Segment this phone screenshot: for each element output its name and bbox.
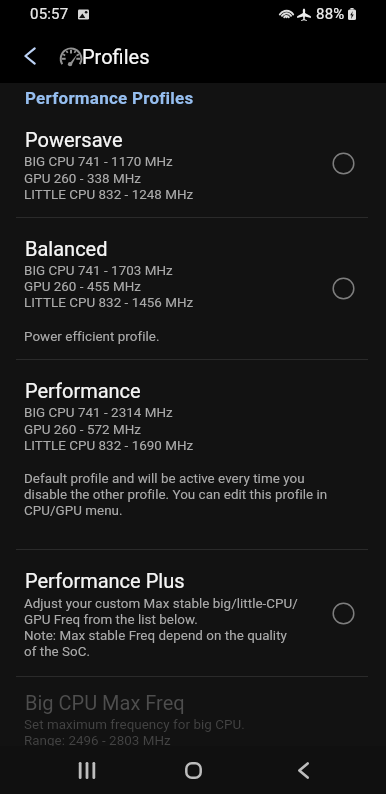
button[interactable]: Balanced [0, 218, 386, 358]
staticText: BIG CPU 741 - 1703 MHz [24, 262, 173, 278]
staticText: Performance Plus [25, 569, 185, 592]
staticText: Performance Profiles [25, 90, 194, 108]
staticText: CPU/GPU menu. [24, 502, 123, 518]
staticText: LITTLE CPU 832 - 1690 MHz [24, 437, 194, 453]
button[interactable]: Powersave [0, 110, 386, 217]
staticText: LITTLE CPU 832 - 1456 MHz [24, 294, 194, 310]
staticText: LITTLE CPU 832 - 1248 MHz [24, 186, 194, 202]
staticText: of the SoC. [24, 643, 91, 659]
button[interactable]: Recent apps [22, 746, 152, 794]
staticText: GPU 260 - 455 MHz [24, 278, 141, 294]
staticText: Profiles [82, 47, 150, 69]
staticText: GPU Freq from the list below. [24, 611, 198, 627]
staticText: Set maximum frequency for big CPU. [24, 716, 245, 732]
staticText: Performance [25, 379, 141, 402]
button[interactable]: Home [152, 746, 234, 794]
staticText: Adjust your custom Max stable big/little… [24, 595, 298, 611]
button[interactable]: Performance [0, 359, 386, 549]
staticText: Range: 2496 - 2803 MHz [24, 732, 171, 748]
staticText: Default profile and will be active every… [24, 470, 305, 486]
button[interactable]: Navigate up [9, 34, 50, 78]
staticText: Powersave [25, 128, 123, 151]
button[interactable]: Back [238, 746, 368, 794]
staticText: 88% [316, 5, 345, 23]
staticText: GPU 260 - 338 MHz [24, 170, 141, 186]
button[interactable]: Performance Profiles [25, 90, 205, 112]
staticText: Power efficient profile. [24, 328, 160, 344]
staticText: Big CPU Max Freq [25, 691, 185, 714]
staticText: GPU 260 - 572 MHz [24, 421, 141, 437]
staticText: disable the other profile. You can edit … [24, 486, 328, 502]
staticText: BIG CPU 741 - 2314 MHz [24, 404, 173, 420]
staticText: BIG CPU 741 - 1170 MHz [24, 153, 173, 169]
button[interactable]: Performance Plus [0, 549, 386, 676]
staticText: Note: Max stable Freq depend on the qual… [24, 627, 287, 643]
staticText: 05:57 [30, 5, 69, 23]
staticText: Balanced [25, 237, 108, 260]
